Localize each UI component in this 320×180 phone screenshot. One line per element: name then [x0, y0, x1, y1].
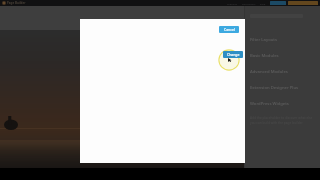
button[interactable]: Features	[225, 2, 240, 5]
staticText: Page Builder	[7, 1, 26, 5]
button[interactable]: Site home	[2, 1, 26, 5]
button[interactable]: Cancel	[219, 26, 239, 33]
staticText: Cancel	[224, 27, 235, 32]
button[interactable]: Extension Designer Plus	[250, 80, 316, 96]
button[interactable]: Change	[223, 51, 243, 58]
button[interactable]: Advanced Modules	[250, 64, 316, 80]
staticText: Change	[227, 52, 240, 57]
staticText: Documents	[242, 2, 256, 5]
staticText: Advanced Modules	[250, 69, 288, 75]
staticText: Features	[227, 2, 238, 5]
button[interactable]: Documents	[240, 2, 258, 5]
button[interactable]: Blog	[258, 2, 268, 5]
staticText: Filter Layouts	[250, 37, 278, 43]
button[interactable]: Basic Modules	[250, 48, 316, 64]
staticText: Basic Modules	[250, 53, 279, 59]
button[interactable]: Filter Layouts	[250, 32, 316, 48]
staticText: WordPress Widgets	[250, 101, 289, 107]
staticText: Blog	[260, 2, 266, 5]
button[interactable]: WordPress Widgets	[250, 96, 316, 112]
staticText: Extension Designer Plus	[250, 85, 299, 91]
other: Pointer	[228, 58, 232, 62]
